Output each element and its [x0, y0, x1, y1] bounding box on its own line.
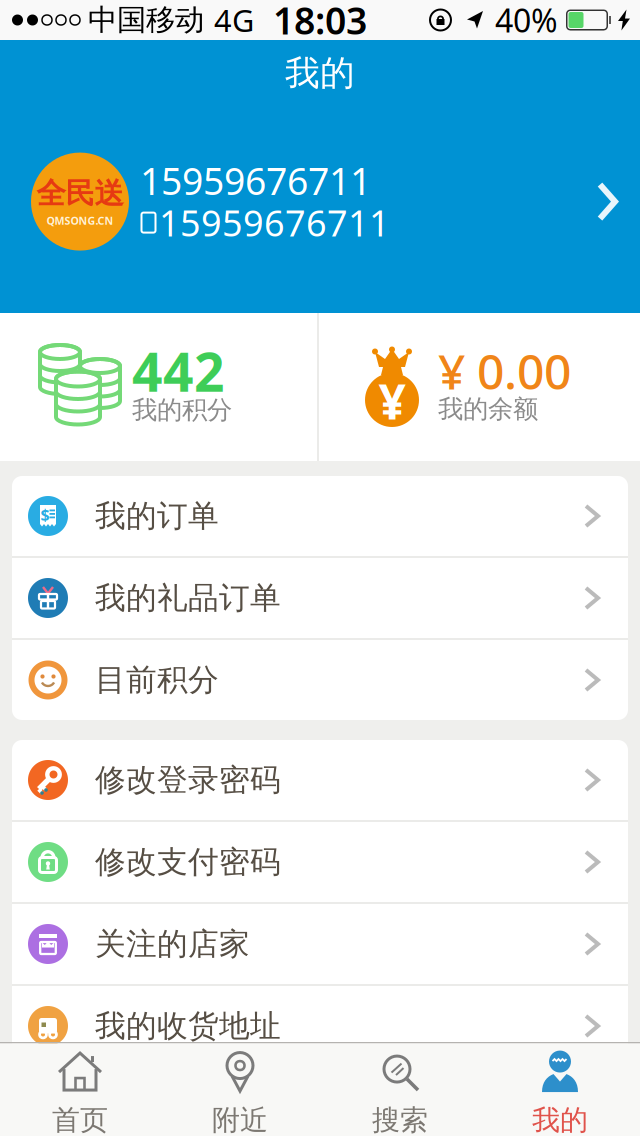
staticText: 全民送: [36, 175, 123, 211]
staticText: 修改登录密码: [95, 761, 281, 799]
button[interactable]: 我的礼品订单: [12, 558, 628, 638]
staticText: 4G: [214, 0, 254, 40]
staticText: 中国移动: [88, 2, 204, 38]
staticText: 我的: [532, 1103, 588, 1136]
button[interactable]: 修改支付密码: [12, 822, 628, 902]
staticText: 我的订单: [95, 497, 219, 535]
staticText: 首页: [52, 1103, 108, 1136]
staticText: ¥: [378, 369, 405, 433]
button[interactable]: 全民送: [0, 142, 640, 262]
button[interactable]: 目前积分: [12, 640, 628, 720]
staticText: 15959676711: [159, 199, 390, 246]
staticText: 442: [132, 336, 225, 406]
staticText: 目前积分: [95, 661, 219, 699]
button[interactable]: 我的收货地址: [12, 986, 628, 1066]
staticText: ¥ 0.00: [438, 339, 571, 403]
staticText: 40%: [495, 0, 558, 41]
button[interactable]: 首页: [0, 1044, 160, 1136]
button[interactable]: 修改登录密码: [12, 740, 628, 820]
button[interactable]: 附近: [160, 1044, 320, 1136]
staticText: QMSONG.CN: [46, 213, 113, 228]
staticText: 我的积分: [132, 394, 232, 425]
staticText: 我的: [285, 52, 355, 95]
staticText: 18:03: [273, 0, 367, 45]
button[interactable]: 关注的店家: [12, 904, 628, 984]
staticText: 我的余额: [438, 393, 538, 424]
staticText: 关注的店家: [95, 925, 250, 963]
staticText: $: [40, 504, 49, 525]
button[interactable]: ¥: [319, 313, 640, 461]
button[interactable]: $: [12, 476, 628, 556]
staticText: 15959676711: [140, 156, 371, 205]
button[interactable]: 我的: [480, 1044, 640, 1136]
staticText: 我的礼品订单: [95, 579, 281, 617]
staticText: 我的收货地址: [95, 1007, 281, 1045]
staticText: 修改支付密码: [95, 843, 281, 881]
staticText: 附近: [212, 1103, 268, 1136]
staticText: 搜索: [372, 1103, 428, 1136]
button[interactable]: 搜索: [320, 1044, 480, 1136]
button[interactable]: 442: [0, 313, 317, 461]
